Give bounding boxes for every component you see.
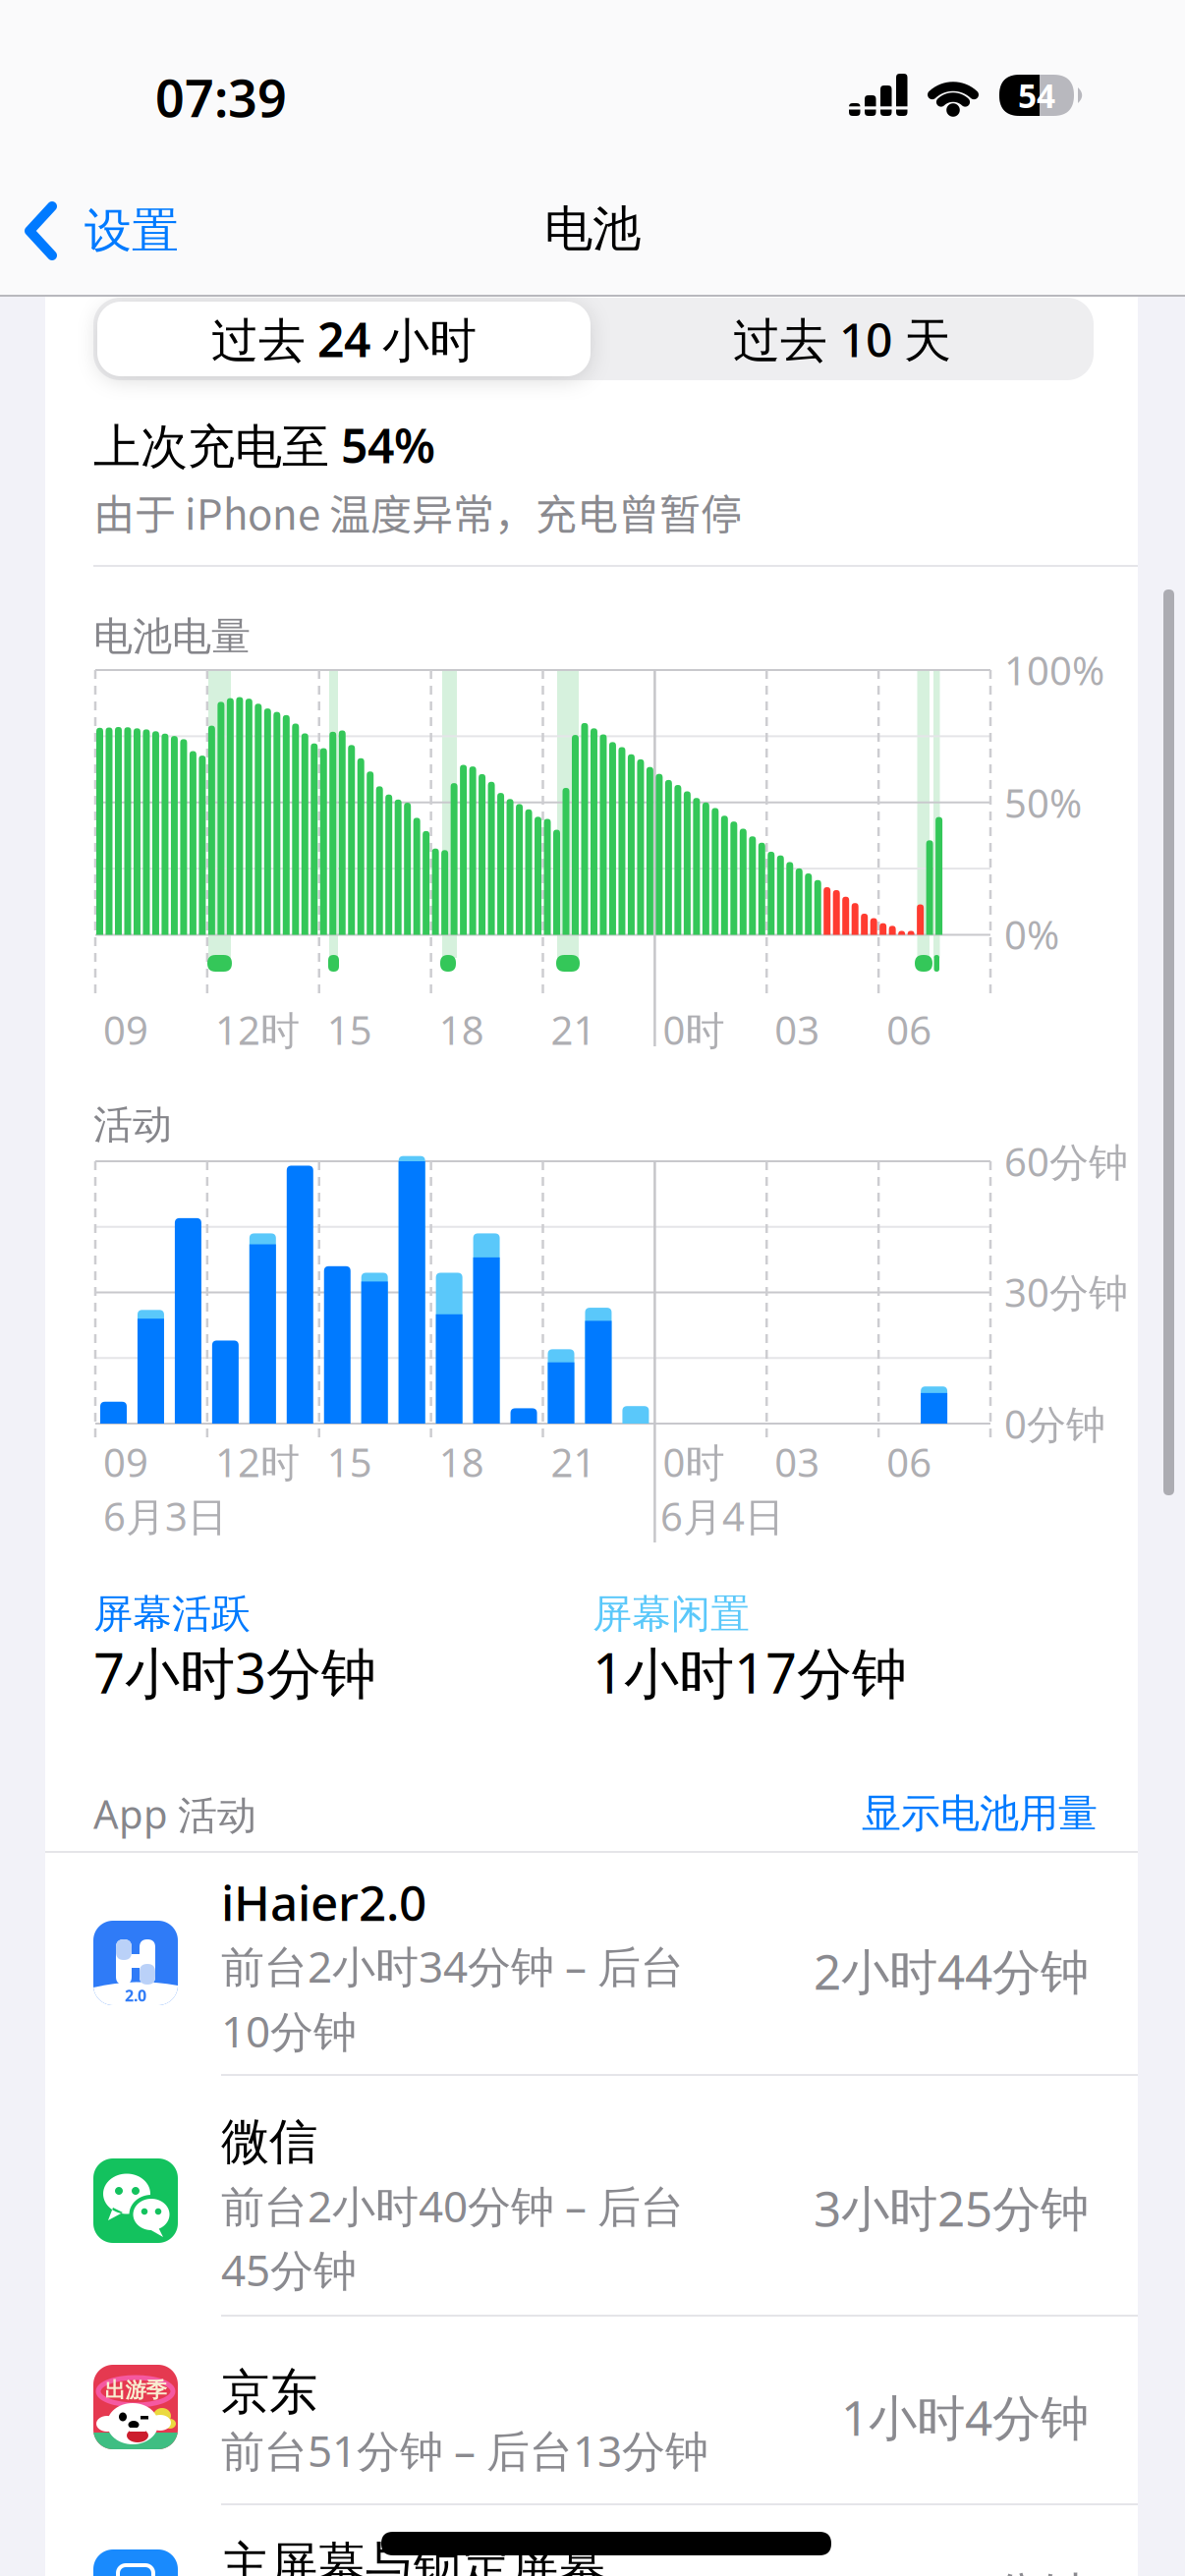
staticText: 54 (1018, 74, 1055, 117)
staticText: 21 (551, 1003, 596, 1056)
staticText: 出游季 (105, 2377, 167, 2403)
staticText: 设置 (85, 202, 179, 260)
staticText: 电池电量 (93, 612, 251, 661)
staticText: 15 (327, 1003, 372, 1056)
staticText: 10分钟 (221, 2002, 357, 2059)
staticText: 21 (551, 1436, 596, 1488)
staticText: 45分钟 (221, 2241, 357, 2298)
button[interactable]: 出游季 (45, 2317, 1138, 2505)
staticText: 18 (439, 1003, 484, 1056)
button[interactable]: 微信 (45, 2076, 1138, 2317)
staticText: 显示电池用量 (862, 1789, 1098, 1838)
staticText: 7小时3分钟 (93, 1636, 376, 1709)
staticText: 50% (1004, 777, 1082, 829)
staticText: 2小时44分钟 (814, 1939, 1089, 2003)
staticText: 过去 24 小时 (211, 308, 477, 370)
staticText: 60分钟 (1004, 1135, 1128, 1187)
staticText: 前台2小时40分钟 – 后台 (221, 2177, 684, 2234)
staticText: 09 (103, 1003, 148, 1056)
staticText: 100% (1004, 644, 1104, 696)
staticText: 电池 (544, 199, 641, 259)
button[interactable]: 设置 (26, 199, 179, 262)
staticText: 03 (774, 1003, 820, 1056)
staticText: 主屏幕与锁定屏幕 (221, 2535, 606, 2576)
staticText: 2.0 (125, 1985, 146, 2006)
staticText: 0时 (663, 1003, 725, 1056)
staticText: 前台51分钟 – 后台13分钟 (221, 2422, 708, 2479)
staticText: App 活动 (93, 1787, 256, 1840)
button[interactable]: 显示电池用量 (606, 1784, 1098, 1843)
staticText: 15 (327, 1436, 372, 1488)
staticText: 屏幕活跃 (93, 1590, 251, 1638)
staticText: 1小时4分钟 (841, 2385, 1089, 2449)
staticText: 6月4日 (660, 1490, 784, 1542)
staticText: 06 (886, 1003, 932, 1056)
staticText: 前台2小时34分钟 – 后台 (221, 1937, 684, 1995)
staticText: 由于 iPhone 温度异常，充电曾暂停 (93, 482, 742, 542)
staticText: iHaier2.0 (221, 1870, 426, 1934)
staticText: 03 (774, 1436, 820, 1488)
staticText: 12时 (215, 1436, 300, 1488)
button[interactable]: 主屏幕与锁定屏幕 (45, 2505, 1138, 2576)
staticText: 09 (103, 1436, 148, 1488)
staticText: 12时 (215, 1003, 300, 1056)
staticText: 活动 (93, 1101, 172, 1149)
staticText: 07:39 (155, 63, 287, 131)
staticText: 0时 (663, 1436, 725, 1488)
button[interactable]: 过去 10 天 (592, 302, 1092, 376)
staticText: 屏幕闲置 (592, 1590, 750, 1638)
staticText: 30分钟 (1004, 1266, 1128, 1318)
staticText: 上次充电至 54% (93, 414, 435, 476)
staticText: 1小时17分钟 (592, 1636, 907, 1709)
staticText: 18 (439, 1436, 484, 1488)
button[interactable]: 2.0 (45, 1853, 1138, 2076)
staticText: 过去 10 天 (733, 308, 951, 370)
staticText: 微信 (221, 2112, 317, 2172)
staticText: 京东 (221, 2363, 317, 2422)
staticText: 0分钟 (1004, 1397, 1105, 1450)
staticText: 0% (1004, 908, 1059, 960)
staticText: 37分钟 (937, 2561, 1089, 2576)
staticText: 6月3日 (103, 1490, 227, 1542)
staticText: 06 (886, 1436, 932, 1488)
button[interactable]: 过去 24 小时 (97, 302, 591, 376)
staticText: 3小时25分钟 (814, 2175, 1089, 2240)
